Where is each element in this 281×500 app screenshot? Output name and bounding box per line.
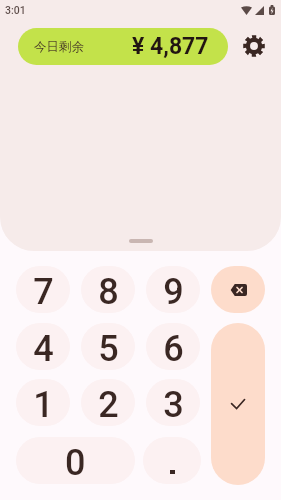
button[interactable]: 6 (146, 323, 200, 370)
button[interactable] (143, 437, 201, 484)
button[interactable]: 2 (81, 379, 135, 426)
staticText: 6 (163, 328, 184, 370)
staticText: 8 (98, 271, 119, 313)
button[interactable]: 0 (16, 437, 135, 484)
button[interactable]: Settings (238, 30, 270, 62)
staticText: 今日剩余 (34, 39, 84, 55)
staticText: 1 (33, 384, 54, 426)
button[interactable]: 3 (146, 379, 200, 426)
button[interactable]: Delete (211, 266, 265, 313)
staticText: 3 (163, 384, 184, 426)
button[interactable]: 4 (16, 323, 70, 370)
button[interactable]: 8 (81, 266, 135, 313)
button[interactable]: 1 (16, 379, 70, 426)
button[interactable]: Confirm (211, 323, 265, 485)
staticText: 7 (33, 271, 54, 313)
button[interactable]: 7 (16, 266, 70, 313)
staticText: 3:01 (5, 4, 26, 16)
button[interactable]: 5 (81, 323, 135, 370)
button[interactable]: 9 (146, 266, 200, 313)
staticText: 9 (163, 271, 184, 313)
staticText: 0 (65, 442, 86, 484)
staticText: 2 (98, 384, 119, 426)
button[interactable]: 今日剩余 (18, 28, 228, 65)
staticText: 5 (98, 328, 119, 370)
staticText: 4 (33, 328, 54, 370)
staticText: ¥ 4,877 (132, 33, 209, 60)
